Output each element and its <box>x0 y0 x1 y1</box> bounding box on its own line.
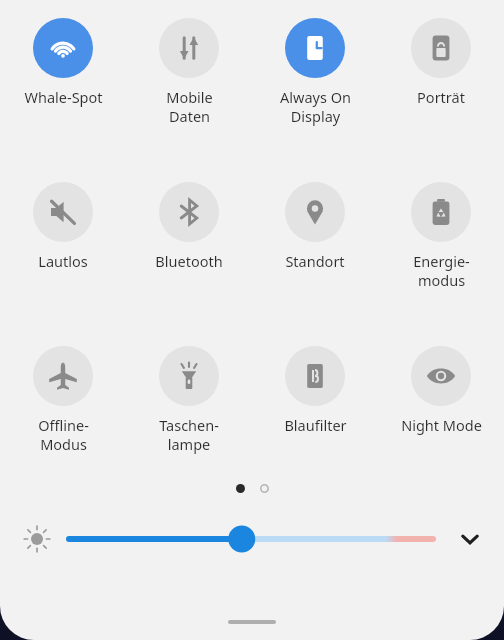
staticText: Bluetooth <box>155 251 223 271</box>
button[interactable] <box>260 484 269 493</box>
button[interactable]: Whale-Spot <box>0 18 126 107</box>
staticText: Lautlos <box>38 251 88 271</box>
button[interactable]: Blaufilter <box>252 346 378 435</box>
button[interactable]: Porträt <box>378 18 504 107</box>
staticText: Blaufilter <box>284 415 347 435</box>
staticText: Mobile Daten <box>166 87 213 126</box>
button[interactable]: Bluetooth <box>126 182 252 271</box>
button[interactable]: Taschen- lampe <box>126 346 252 454</box>
staticText: Offline- Modus <box>38 415 89 454</box>
button[interactable]: Always On Display <box>252 18 378 126</box>
staticText: Always On Display <box>280 87 351 126</box>
staticText: Porträt <box>417 87 465 107</box>
button[interactable]: Expand <box>450 519 490 559</box>
staticText: Energie- modus <box>413 251 470 290</box>
staticText: Standort <box>285 251 345 271</box>
button[interactable]: Mobile Daten <box>126 18 252 126</box>
button[interactable]: Brightness slider <box>66 522 436 556</box>
staticText: Whale-Spot <box>24 87 103 107</box>
staticText: Night Mode <box>401 415 482 435</box>
button[interactable] <box>236 484 245 493</box>
button[interactable]: Energie- modus <box>378 182 504 290</box>
button[interactable]: Brightness <box>20 522 54 556</box>
button[interactable]: Standort <box>252 182 378 271</box>
staticText: Taschen- lampe <box>159 415 219 454</box>
button[interactable]: Handle <box>228 620 276 624</box>
button[interactable]: Night Mode <box>378 346 504 435</box>
button[interactable]: Lautlos <box>0 182 126 271</box>
button[interactable]: Offline- Modus <box>0 346 126 454</box>
